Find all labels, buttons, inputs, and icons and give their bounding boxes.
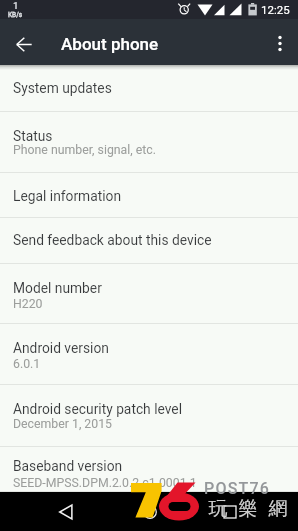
button[interactable]: Baseband version [0,447,298,492]
staticText: About phone [61,34,159,54]
staticText: Android version [13,340,109,356]
staticText: KB/s [8,11,23,19]
button[interactable]: Back [48,494,84,530]
staticText: 1 [13,0,19,11]
staticText: Phone number, signal, etc. [13,143,156,157]
button[interactable]: Recent apps [212,494,248,530]
button[interactable]: Navigate up [1,21,47,67]
button[interactable]: Home [132,494,168,530]
staticText: H220 [13,297,43,311]
staticText: Status [13,128,53,144]
button[interactable]: More options [260,23,298,63]
button[interactable]: Model number [0,264,298,324]
staticText: Model number [13,280,102,296]
staticText: 6.0.1 [13,357,41,371]
button[interactable]: Legal information [0,173,298,218]
staticText: SEED-MPSS.DPM.2.0.2.c1.0001.1 [13,476,197,490]
staticText: System updates [13,80,112,96]
staticText: Baseband version [13,458,123,474]
button[interactable]: Android version [0,324,298,385]
button[interactable]: System updates [0,65,298,112]
staticText: Android security patch level [13,401,182,417]
staticText: December 1, 2015 [13,417,112,431]
staticText: 12:25 [261,3,290,16]
staticText: 玩樂網 [203,497,293,521]
button[interactable]: Send feedback about this device [0,218,298,264]
staticText: Send feedback about this device [13,232,212,248]
button[interactable]: Status [0,112,298,173]
button[interactable]: Android security patch level [0,385,298,447]
staticText: Legal information [13,188,122,204]
staticText: POST76 [204,479,271,498]
